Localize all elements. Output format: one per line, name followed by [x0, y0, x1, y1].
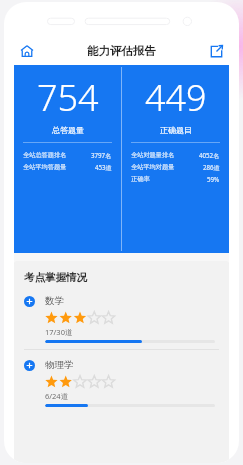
- button[interactable]: Share: [203, 38, 229, 64]
- staticText: 总答题量: [52, 125, 84, 135]
- staticText: 754: [37, 73, 99, 122]
- staticText: 正确率: [131, 175, 150, 183]
- button[interactable]: Home: [14, 38, 40, 64]
- staticText: 3797名: [91, 151, 112, 159]
- staticText: 4052名: [199, 151, 220, 159]
- staticText: 物理学: [45, 359, 74, 371]
- other: Expand 数学: [24, 296, 35, 307]
- staticText: 449: [145, 73, 207, 122]
- staticText: 17/30道: [45, 327, 73, 337]
- staticText: 453道: [95, 163, 112, 171]
- button[interactable]: Expand 物理学: [14, 350, 229, 413]
- other: Expand 物理学: [24, 360, 35, 371]
- staticText: 59%: [207, 175, 220, 183]
- staticText: 286道: [203, 163, 220, 171]
- staticText: 全站平均答题量: [23, 163, 67, 171]
- staticText: 全站总答题排名: [23, 151, 67, 159]
- staticText: 6/24道: [45, 391, 69, 401]
- staticText: 正确题目: [160, 125, 192, 135]
- staticText: 全站平均对题量: [131, 163, 175, 171]
- button[interactable]: Expand 数学: [14, 286, 229, 349]
- staticText: 数学: [45, 295, 64, 307]
- staticText: 考点掌握情况: [24, 271, 87, 284]
- staticText: 能力评估报告: [87, 44, 156, 58]
- staticText: 全站对题量排名: [131, 151, 175, 159]
